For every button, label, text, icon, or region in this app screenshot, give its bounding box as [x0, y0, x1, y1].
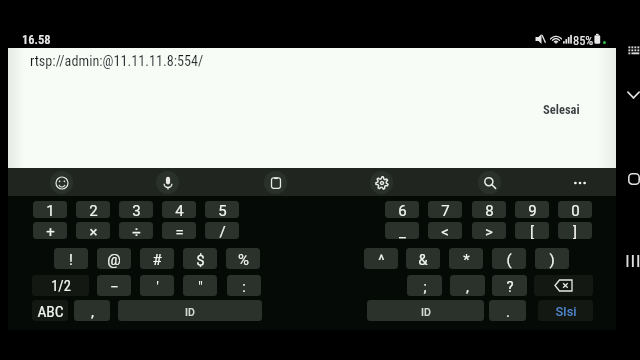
staticText: / [219, 223, 226, 239]
button[interactable]: . [489, 300, 526, 321]
button[interactable]: [ [515, 222, 549, 239]
button[interactable]: , [450, 275, 485, 296]
button[interactable]: 3 [119, 201, 153, 218]
staticText: + [46, 223, 55, 239]
staticText: ' [156, 278, 159, 296]
button[interactable]: 9 [515, 201, 549, 218]
button[interactable]: 2 [76, 201, 110, 218]
button[interactable]: 5 [205, 201, 239, 218]
staticText: ABC [37, 303, 64, 321]
staticText: ) [549, 251, 555, 269]
button[interactable]: , [74, 300, 110, 321]
button[interactable]: Selesai [529, 96, 593, 122]
button[interactable]: 0 [558, 201, 592, 218]
staticText: 2 [89, 202, 98, 218]
button[interactable]: _ [385, 222, 419, 239]
button[interactable]: @ [97, 248, 131, 269]
staticText: & [418, 251, 428, 269]
staticText: , [91, 303, 94, 321]
staticText: ID [421, 306, 431, 318]
button[interactable]: Backspace [534, 275, 593, 296]
staticText: ID [185, 306, 195, 318]
button[interactable]: 4 [162, 201, 196, 218]
staticText: Selesai [543, 102, 580, 117]
button[interactable]: < [428, 222, 462, 239]
staticText: * [463, 251, 470, 269]
staticText: 3 [132, 202, 141, 218]
button[interactable]: Search [478, 171, 501, 194]
button[interactable]: + [33, 222, 67, 239]
button[interactable]: * [449, 248, 483, 269]
button[interactable]: : [227, 275, 261, 296]
staticText: 5 [218, 202, 227, 218]
staticText: ! [69, 251, 73, 269]
staticText: ( [506, 251, 512, 269]
button[interactable]: 1/2 [32, 275, 89, 296]
button[interactable]: Keyboard [626, 42, 640, 58]
button[interactable]: % [226, 248, 260, 269]
button[interactable]: ( [492, 248, 526, 269]
staticText: = [175, 223, 184, 239]
staticText: # [152, 251, 162, 269]
staticText: ; [423, 278, 427, 296]
staticText: ] [573, 223, 577, 239]
staticText: @ [107, 251, 121, 269]
staticText: : [242, 278, 246, 296]
button[interactable]: ] [558, 222, 592, 239]
staticText: 6 [398, 202, 407, 218]
staticText: ^ [378, 251, 385, 269]
button[interactable]: > [472, 222, 506, 239]
button[interactable]: Settings [370, 171, 393, 194]
button[interactable]: SIsi [538, 300, 593, 321]
staticText: ÷ [132, 223, 141, 239]
button[interactable]: 1 [33, 201, 67, 218]
other: Backspace [554, 279, 573, 292]
button[interactable]: ' [140, 275, 174, 296]
staticText: × [89, 223, 98, 239]
staticText: − [110, 278, 119, 296]
button[interactable]: Clipboard [264, 171, 287, 194]
button[interactable]: Hide keyboard [624, 86, 640, 104]
button[interactable]: ID [118, 300, 262, 321]
button[interactable]: / [205, 222, 239, 239]
button[interactable]: Emoji [50, 171, 73, 194]
staticText: % [238, 251, 249, 269]
staticText: 4 [175, 202, 184, 218]
button[interactable]: ID [367, 300, 484, 321]
button[interactable]: ! [54, 248, 88, 269]
staticText: , [466, 278, 469, 296]
staticText: 1 [46, 202, 55, 218]
button[interactable]: 6 [385, 201, 419, 218]
staticText: $ [196, 251, 205, 269]
button[interactable]: # [140, 248, 174, 269]
button[interactable]: More options [568, 171, 591, 194]
button[interactable]: ÷ [119, 222, 153, 239]
staticText: 1/2 [51, 278, 71, 295]
button[interactable]: − [97, 275, 131, 296]
button[interactable]: = [162, 222, 196, 239]
staticText: 8 [485, 202, 494, 218]
button[interactable]: 8 [472, 201, 506, 218]
staticText: 85% [573, 33, 594, 48]
staticText: ? [506, 278, 514, 296]
button[interactable]: " [183, 275, 217, 296]
staticText: . [506, 303, 510, 321]
staticText: 7 [441, 202, 450, 218]
staticText: [ [530, 223, 534, 239]
button[interactable]: Home [624, 169, 640, 189]
button[interactable]: Recent apps [622, 251, 640, 271]
button[interactable]: ) [535, 248, 569, 269]
button[interactable]: $ [183, 248, 217, 269]
button[interactable]: ^ [364, 248, 398, 269]
button[interactable]: ABC [32, 300, 68, 321]
staticText: rtsp://admin:@11.11.11.8:554/ [30, 53, 204, 70]
button[interactable]: & [406, 248, 440, 269]
button[interactable]: × [76, 222, 110, 239]
staticText: 16.58 [22, 32, 51, 47]
staticText: 0 [571, 202, 580, 218]
button[interactable]: Voice input [156, 171, 179, 194]
staticText: SIsi [555, 304, 577, 319]
button[interactable]: ? [492, 275, 527, 296]
button[interactable]: ; [407, 275, 442, 296]
button[interactable]: 7 [428, 201, 462, 218]
